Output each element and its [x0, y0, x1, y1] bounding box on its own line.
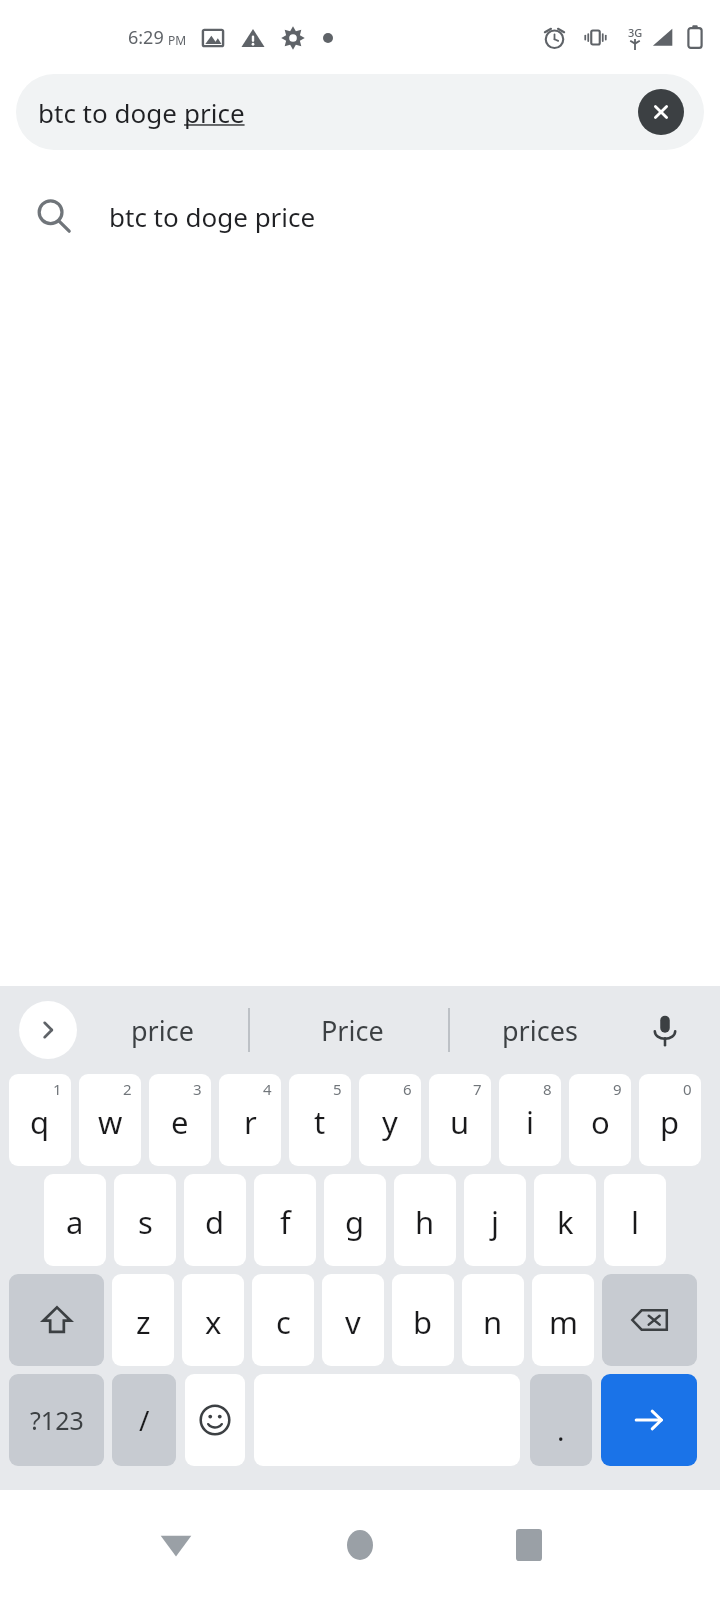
- button[interactable]: More suggestions: [19, 1001, 77, 1059]
- staticText: 8: [543, 1079, 552, 1099]
- staticText: 7: [473, 1079, 482, 1099]
- button[interactable]: Price: [290, 995, 414, 1065]
- button[interactable]: btc to doge: [16, 74, 704, 150]
- button[interactable]: w: [79, 1074, 141, 1166]
- staticText: ?123: [30, 1403, 84, 1437]
- button[interactable]: Voice input: [638, 1003, 692, 1057]
- button[interactable]: n: [462, 1274, 524, 1366]
- button[interactable]: Backspace: [602, 1274, 697, 1366]
- staticText: b: [413, 1301, 433, 1343]
- staticText: t: [314, 1101, 326, 1143]
- staticText: price: [131, 1012, 194, 1049]
- staticText: y: [382, 1101, 398, 1143]
- button[interactable]: x: [182, 1274, 244, 1366]
- staticText: n: [483, 1301, 503, 1343]
- staticText: x: [205, 1301, 222, 1343]
- button[interactable]: u: [429, 1074, 491, 1166]
- button[interactable]: g: [324, 1174, 386, 1266]
- button[interactable]: /: [112, 1374, 176, 1466]
- button[interactable]: Clear search: [638, 89, 684, 135]
- button[interactable]: a: [44, 1174, 106, 1266]
- staticText: v: [345, 1301, 361, 1343]
- button[interactable]: d: [184, 1174, 246, 1266]
- staticText: j: [491, 1201, 499, 1243]
- button[interactable]: Emoji: [185, 1374, 245, 1466]
- button[interactable]: q: [9, 1074, 71, 1166]
- staticText: PM: [168, 32, 187, 48]
- button[interactable]: r: [219, 1074, 281, 1166]
- staticText: /: [139, 1401, 150, 1439]
- button[interactable]: f: [254, 1174, 316, 1266]
- button[interactable]: price: [100, 995, 224, 1065]
- staticText: p: [660, 1101, 680, 1143]
- staticText: d: [205, 1201, 225, 1243]
- button[interactable]: c: [252, 1274, 314, 1366]
- staticText: 5: [333, 1079, 342, 1099]
- button[interactable]: t: [289, 1074, 351, 1166]
- staticText: 1: [53, 1079, 62, 1099]
- staticText: k: [557, 1201, 574, 1243]
- button[interactable]: h: [394, 1174, 456, 1266]
- staticText: o: [591, 1101, 610, 1143]
- staticText: l: [631, 1201, 639, 1243]
- staticText: 0: [683, 1079, 692, 1099]
- button[interactable]: e: [149, 1074, 211, 1166]
- staticText: price: [184, 95, 245, 130]
- button[interactable]: o: [569, 1074, 631, 1166]
- staticText: w: [98, 1101, 123, 1143]
- staticText: 3G: [628, 25, 643, 40]
- button[interactable]: i: [499, 1074, 561, 1166]
- button[interactable]: m: [532, 1274, 594, 1366]
- button[interactable]: Recents: [493, 1509, 565, 1581]
- staticText: q: [30, 1101, 50, 1143]
- staticText: 9: [613, 1079, 622, 1099]
- staticText: h: [415, 1201, 435, 1243]
- button[interactable]: j: [464, 1174, 526, 1266]
- button[interactable]: l: [604, 1174, 666, 1266]
- staticText: g: [345, 1201, 365, 1243]
- button[interactable]: Shift: [9, 1274, 104, 1366]
- staticText: r: [244, 1101, 257, 1143]
- staticText: 6:29: [128, 25, 164, 50]
- button[interactable]: z: [112, 1274, 174, 1366]
- staticText: s: [138, 1201, 153, 1243]
- staticText: btc to doge: [38, 95, 184, 130]
- staticText: e: [171, 1101, 189, 1143]
- staticText: prices: [502, 1012, 578, 1049]
- staticText: 2: [123, 1079, 132, 1099]
- button[interactable]: v: [322, 1274, 384, 1366]
- button[interactable]: btc to doge price: [0, 174, 720, 258]
- staticText: a: [66, 1201, 84, 1243]
- staticText: 3: [193, 1079, 202, 1099]
- button[interactable]: Back: [140, 1509, 212, 1581]
- staticText: i: [526, 1101, 534, 1143]
- button[interactable]: .: [530, 1374, 592, 1466]
- staticText: .: [557, 1411, 565, 1449]
- staticText: 4: [263, 1079, 272, 1099]
- staticText: f: [280, 1201, 291, 1243]
- button[interactable]: b: [392, 1274, 454, 1366]
- staticText: Price: [321, 1012, 384, 1049]
- button[interactable]: y: [359, 1074, 421, 1166]
- button[interactable]: prices: [478, 995, 602, 1065]
- button[interactable]: p: [639, 1074, 701, 1166]
- button[interactable]: s: [114, 1174, 176, 1266]
- staticText: z: [136, 1301, 151, 1343]
- staticText: c: [276, 1301, 291, 1343]
- staticText: u: [450, 1101, 470, 1143]
- staticText: btc to doge price: [109, 199, 316, 234]
- staticText: 6: [403, 1079, 412, 1099]
- button[interactable]: k: [534, 1174, 596, 1266]
- staticText: m: [549, 1301, 578, 1343]
- button[interactable]: Search: [601, 1374, 697, 1466]
- button[interactable]: Home: [324, 1509, 396, 1581]
- button[interactable]: ?123: [9, 1374, 104, 1466]
